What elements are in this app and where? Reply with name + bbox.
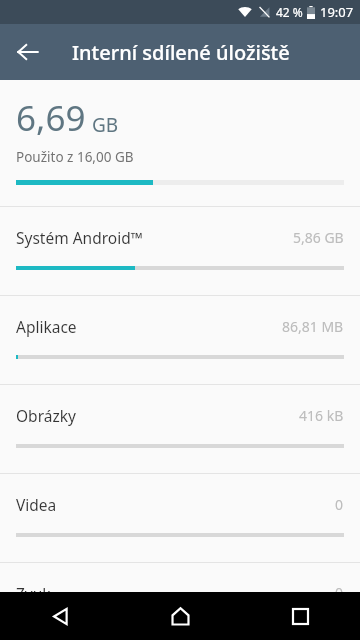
staticText: Zvuk — [16, 583, 51, 592]
button[interactable]: Back — [0, 24, 56, 80]
button[interactable]: Back — [0, 592, 120, 640]
staticText: 42 % — [276, 4, 303, 20]
button[interactable]: 6,69 — [0, 80, 360, 206]
button[interactable]: Aplikace — [0, 296, 360, 384]
staticText: 416 kB — [299, 406, 344, 425]
staticText: Interní sdílené úložiště — [72, 39, 290, 66]
staticText: GB — [92, 112, 119, 138]
staticText: Použito z 16,00 GB — [16, 148, 134, 166]
staticText: 5,86 GB — [293, 228, 344, 247]
staticText: Videa — [16, 494, 57, 515]
staticText: Aplikace — [16, 316, 77, 337]
staticText: 86,81 MB — [282, 317, 344, 336]
button[interactable]: Home — [120, 592, 240, 640]
button[interactable]: Recent apps — [240, 592, 360, 640]
staticText: 0 — [335, 495, 344, 514]
button[interactable]: Videa — [0, 474, 360, 562]
staticText: 19:07 — [320, 3, 354, 21]
button[interactable]: Zvuk — [0, 563, 360, 592]
staticText: Obrázky — [16, 405, 76, 426]
staticText: 6,69 — [16, 94, 86, 142]
staticText: 0 — [335, 583, 344, 592]
staticText: Systém Android™ — [16, 227, 143, 248]
button[interactable]: Systém Android™ — [0, 207, 360, 295]
button[interactable]: Obrázky — [0, 385, 360, 473]
